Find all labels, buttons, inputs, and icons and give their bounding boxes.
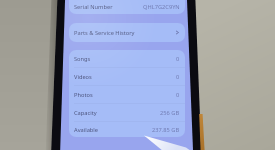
staticText: Capacity [74,109,97,117]
button[interactable]: Available [74,122,180,137]
button[interactable]: Photos [74,86,180,103]
other: Open [175,28,180,37]
button[interactable]: Videos [74,68,180,85]
staticText: 237.85 GB [152,126,180,134]
staticText: 0 [176,55,180,63]
staticText: Available [74,126,99,134]
staticText: 256 GB [160,109,180,117]
button[interactable]: Parts & Service History [69,23,185,42]
staticText: Parts & Service History [74,29,135,37]
staticText: Videos [74,73,92,81]
staticText: Photos [74,91,93,99]
staticText: 0 [176,91,180,99]
staticText: Songs [74,55,91,63]
button[interactable]: Serial Number [69,0,185,14]
button[interactable]: Songs [74,50,180,67]
button[interactable]: Capacity [74,104,180,121]
staticText: QHL7G2C9YN [143,3,180,11]
staticText: 0 [176,73,180,81]
staticText: Serial Number [74,3,113,11]
